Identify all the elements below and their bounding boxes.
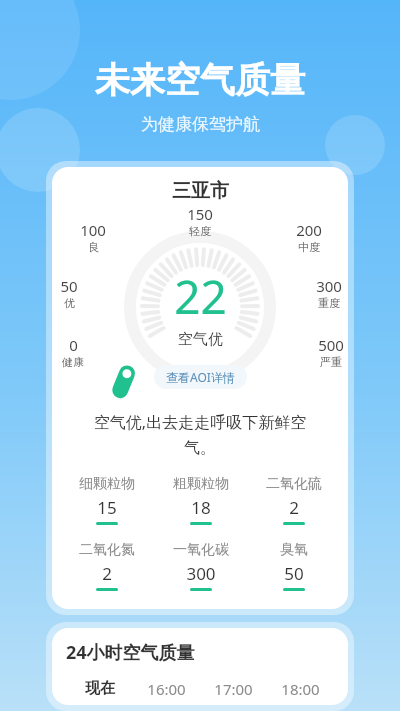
staticText: 细颗粒物 xyxy=(79,475,135,493)
staticText: 良 xyxy=(88,240,99,254)
staticText: 轻度 xyxy=(189,224,211,238)
staticText: 2 xyxy=(289,496,299,519)
staticText: 24小时空气质量 xyxy=(66,640,195,665)
button[interactable]: 查看AOI详情 xyxy=(154,365,247,389)
staticText: 空气优,出去走走呼吸下新鲜空气。 xyxy=(78,411,322,457)
staticText: 17:00 xyxy=(214,679,253,699)
staticText: 粗颗粒物 xyxy=(173,475,229,493)
staticText: 优 xyxy=(64,296,75,310)
staticText: 一氧化碳 xyxy=(173,541,229,559)
staticText: 18:00 xyxy=(281,679,320,699)
staticText: 50 xyxy=(60,276,78,296)
staticText: 15 xyxy=(97,496,117,519)
staticText: 200 xyxy=(296,220,322,240)
staticText: 150 xyxy=(187,204,213,224)
staticText: 二氧化硫 xyxy=(266,475,322,493)
staticText: 500 xyxy=(318,335,344,355)
staticText: 18 xyxy=(191,496,211,519)
staticText: 中度 xyxy=(298,240,320,254)
staticText: 300 xyxy=(186,562,216,585)
staticText: 二氧化氮 xyxy=(79,541,135,559)
staticText: 为健康保驾护航 xyxy=(141,114,260,135)
staticText: 现在 xyxy=(85,679,115,698)
staticText: 重度 xyxy=(318,296,340,310)
staticText: 未来空气质量 xyxy=(95,58,305,102)
staticText: 300 xyxy=(316,276,342,296)
staticText: 100 xyxy=(80,220,106,240)
staticText: 0 xyxy=(69,335,78,355)
staticText: 臭氧 xyxy=(280,541,308,559)
staticText: 查看AOI详情 xyxy=(166,369,235,385)
staticText: 严重 xyxy=(320,355,342,369)
staticText: 2 xyxy=(102,562,112,585)
staticText: 空气优 xyxy=(178,330,223,349)
staticText: 健康 xyxy=(62,355,84,369)
staticText: 三亚市 xyxy=(172,179,229,203)
staticText: 50 xyxy=(284,562,304,585)
staticText: 22 xyxy=(174,265,227,328)
staticText: 16:00 xyxy=(147,679,186,699)
